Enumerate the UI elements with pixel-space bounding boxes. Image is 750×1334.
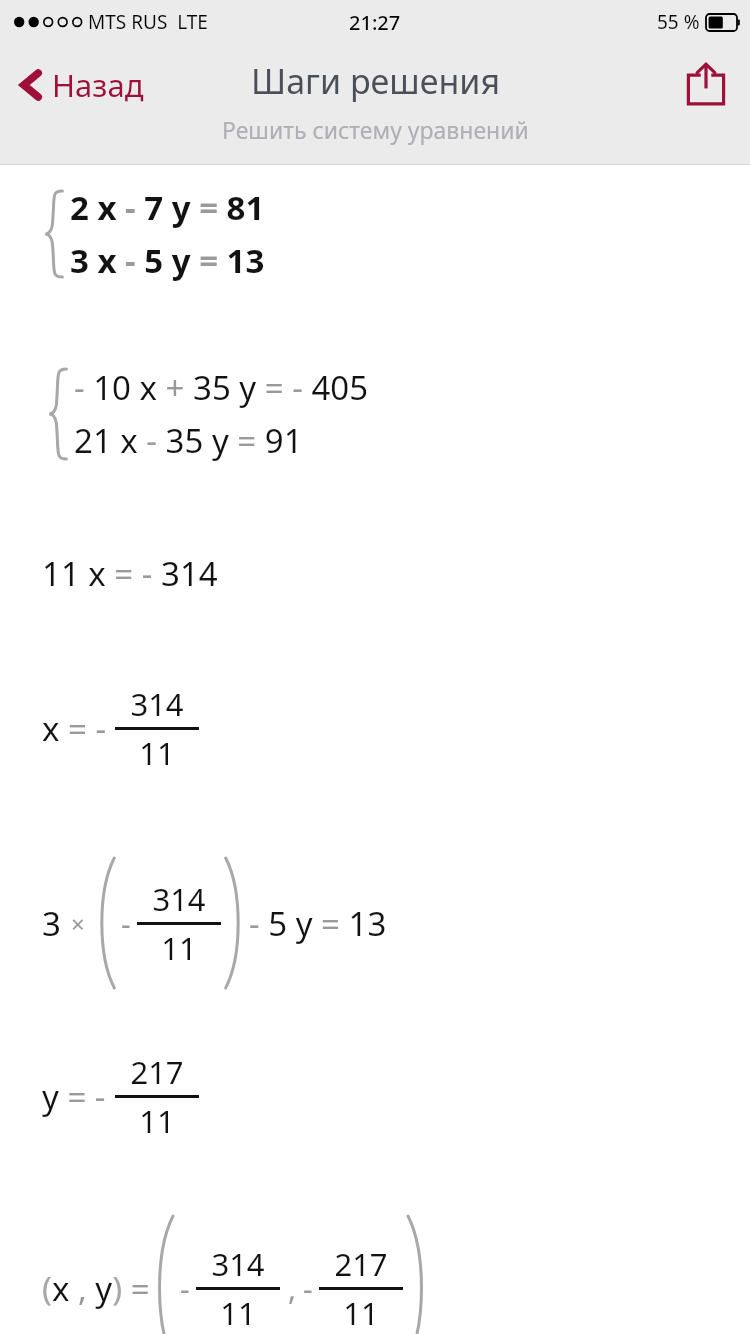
staticText: , (288, 1268, 297, 1309)
staticText: 314 (152, 878, 206, 920)
staticText: - (180, 1268, 190, 1309)
staticText: - 10 x + 35 y = - 405 (74, 365, 369, 410)
staticText: 3 (42, 901, 61, 946)
staticText: 314 (211, 1243, 265, 1285)
staticText: Назад (52, 64, 144, 106)
staticText: - 5 y = 13 (249, 901, 387, 946)
staticText: 11 (139, 732, 175, 774)
staticText: 21:27 (349, 9, 401, 36)
staticText: y = - (42, 1074, 115, 1119)
staticText: 11 x = - 314 (42, 551, 218, 596)
staticText: (x , y) = (42, 1266, 150, 1311)
staticText: 217 (130, 1051, 184, 1093)
staticText: 21 x - 35 y = 91 (74, 418, 303, 463)
staticText: 55 % (657, 9, 700, 35)
staticText: - (121, 903, 131, 944)
staticText: 11 (220, 1292, 256, 1334)
staticText: Шаги решения (251, 58, 501, 104)
staticText: × (71, 907, 85, 940)
staticText: 3 x - 5 y = 13 (70, 238, 265, 283)
staticText: Решить систему уравнений (222, 114, 529, 145)
button[interactable]: Share (678, 56, 734, 112)
staticText: 11 (343, 1292, 379, 1334)
staticText: 2 x - 7 y = 81 (70, 185, 265, 230)
staticText: 314 (130, 683, 184, 725)
staticText: x = - (42, 706, 115, 751)
staticText: - (303, 1268, 313, 1309)
staticText: 217 (334, 1243, 388, 1285)
staticText: 11 (139, 1100, 175, 1142)
staticText: 11 (161, 927, 197, 969)
staticText: MTS RUS LTE (88, 9, 208, 35)
button[interactable]: Назад (12, 58, 150, 112)
